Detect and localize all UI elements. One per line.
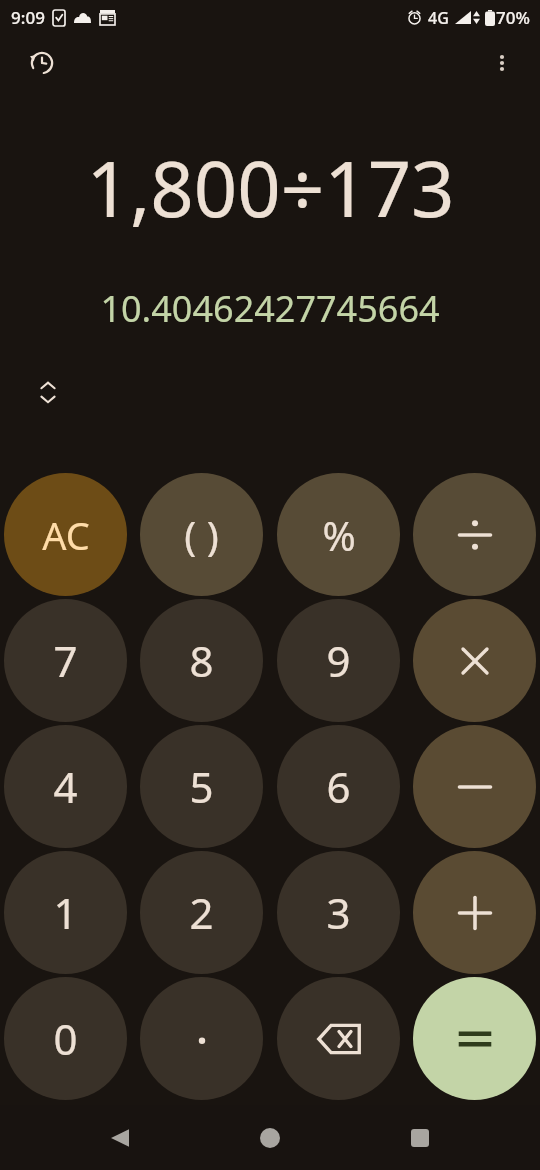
button[interactable]: 7 (4, 599, 127, 722)
staticText: 9:09 (11, 6, 45, 29)
staticText: % (322, 508, 356, 562)
button[interactable]: 8 (140, 599, 263, 722)
button[interactable] (413, 977, 536, 1100)
staticText: 0 (53, 1010, 78, 1067)
button[interactable]: 5 (140, 725, 263, 848)
button[interactable]: History (18, 39, 66, 87)
button[interactable]: % (277, 473, 400, 596)
staticText: 9 (326, 632, 351, 689)
staticText: 7 (53, 632, 78, 689)
staticText: 8 (189, 632, 214, 689)
staticText: 70% (496, 6, 530, 29)
button[interactable]: 3 (277, 851, 400, 974)
button[interactable] (413, 851, 536, 974)
button[interactable]: 1 (4, 851, 127, 974)
staticText: 2 (189, 884, 214, 941)
button[interactable]: ( ) (140, 473, 263, 596)
button[interactable]: Back (90, 1108, 150, 1168)
button[interactable] (413, 725, 536, 848)
button[interactable]: 4 (4, 725, 127, 848)
staticText: 5 (189, 758, 214, 815)
button[interactable]: Recents (390, 1108, 450, 1168)
staticText: 6 (326, 758, 351, 815)
button[interactable]: Expand (26, 371, 70, 415)
staticText: ( ) (184, 508, 219, 562)
button[interactable]: 2 (140, 851, 263, 974)
staticText: 3 (326, 884, 351, 941)
button[interactable]: 9 (277, 599, 400, 722)
button[interactable] (413, 473, 536, 596)
staticText: 4G (428, 7, 449, 29)
button[interactable]: Home (240, 1108, 300, 1168)
button[interactable] (140, 977, 263, 1100)
staticText: 1,800÷173 (86, 136, 455, 240)
button[interactable]: 0 (4, 977, 127, 1100)
button[interactable]: AC (4, 473, 127, 596)
staticText: 1 (53, 884, 78, 941)
staticText: 4 (53, 758, 78, 815)
button[interactable]: More options (480, 41, 524, 85)
button[interactable]: 6 (277, 725, 400, 848)
staticText: AC (42, 509, 90, 561)
button[interactable] (413, 599, 536, 722)
staticText: 10.40462427745664 (100, 284, 440, 333)
button[interactable]: Delete (277, 977, 400, 1100)
